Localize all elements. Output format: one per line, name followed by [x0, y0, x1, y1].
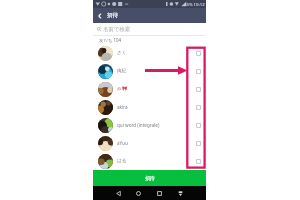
- staticText: aYuu: [117, 140, 191, 146]
- button[interactable]: akira: [93, 98, 206, 116]
- button[interactable]: Recent apps: [153, 187, 166, 200]
- button[interactable]: Hide keyboard: [174, 187, 187, 200]
- button[interactable]: aYuu: [93, 134, 206, 152]
- button[interactable]: Home: [132, 187, 145, 200]
- button[interactable]: Back: [112, 187, 125, 200]
- staticText: 由紀: [117, 68, 191, 74]
- button[interactable]: はる: [93, 152, 206, 170]
- button[interactable]: Select contact: [191, 134, 205, 152]
- button[interactable]: さく: [93, 44, 206, 62]
- staticText: み🎀: [117, 86, 191, 92]
- button[interactable]: 名前で検索: [93, 23, 206, 35]
- staticText: 45% 10:12: [184, 1, 205, 7]
- button[interactable]: Select contact: [191, 152, 205, 170]
- staticText: 招待: [107, 12, 119, 19]
- button[interactable]: Select contact: [191, 98, 205, 116]
- button[interactable]: Back: [93, 8, 106, 23]
- staticText: 名前で検索: [103, 26, 131, 33]
- button[interactable]: 招待: [93, 170, 206, 186]
- button[interactable]: Select contact: [191, 80, 205, 98]
- button[interactable]: み🎀: [93, 80, 206, 98]
- button[interactable]: Select contact: [191, 116, 205, 134]
- button[interactable]: 由紀: [93, 62, 206, 80]
- staticText: 友だち 104: [99, 37, 122, 43]
- staticText: はる: [117, 158, 191, 164]
- staticText: さく: [117, 50, 191, 56]
- button[interactable]: qui word (integrale): [93, 116, 206, 134]
- staticText: akira: [117, 104, 191, 110]
- staticText: qui word (integrale): [117, 122, 191, 128]
- button[interactable]: Select contact: [191, 44, 205, 62]
- button[interactable]: Select contact: [191, 62, 205, 80]
- staticText: 招待: [145, 175, 155, 181]
